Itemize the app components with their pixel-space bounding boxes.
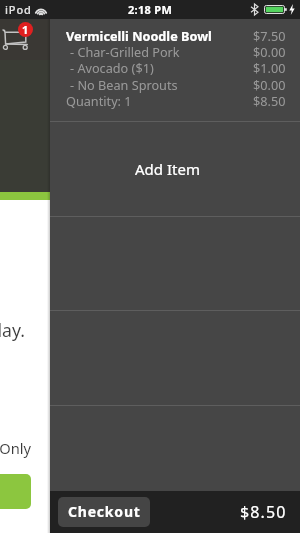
staticText: $0.00 <box>253 43 286 60</box>
staticText: Add Item <box>135 159 200 179</box>
staticText: Cash Only <box>0 438 31 458</box>
staticText: 2:18 PM <box>128 2 173 17</box>
button[interactable]: Cart <box>0 22 36 58</box>
button[interactable]: Checkout <box>58 497 150 527</box>
staticText: $8.50 <box>240 501 287 523</box>
staticText: Vermicelli Noodle Bowl <box>66 27 212 44</box>
staticText: 1 <box>22 22 29 37</box>
staticText: Quantity: 1 <box>66 92 132 109</box>
staticText: $1.00 <box>253 59 286 76</box>
staticText: - Char-Grilled Pork <box>70 43 180 60</box>
staticText: iPod <box>5 2 32 17</box>
staticText: - Avocado ($1) <box>70 59 154 76</box>
staticText: - No Bean Sprouts <box>70 76 178 93</box>
button[interactable]: Order <box>0 474 31 509</box>
button[interactable]: Add Item <box>50 122 300 216</box>
button[interactable]: Vermicelli Noodle Bowl <box>50 19 300 121</box>
staticText: $0.00 <box>253 76 286 93</box>
staticText: $8.50 <box>253 92 286 109</box>
staticText: Pickup Today. <box>0 318 25 342</box>
staticText: $7.50 <box>253 27 286 44</box>
staticText: Checkout <box>68 502 141 521</box>
